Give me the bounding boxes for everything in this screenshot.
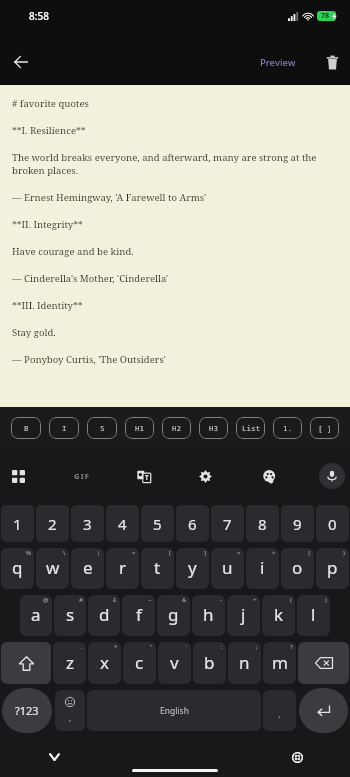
staticText: <: [237, 549, 241, 557]
button[interactable]: 8: [246, 505, 279, 542]
button[interactable]: %: [1, 548, 34, 589]
button[interactable]: (: [262, 595, 295, 636]
button[interactable]: ?123: [2, 688, 52, 733]
staticText: {: [308, 549, 311, 557]
button[interactable]: ?: [263, 642, 296, 684]
staticText: c: [135, 651, 144, 674]
button[interactable]: ~: [122, 595, 155, 636]
button[interactable]: 0: [316, 505, 349, 542]
button[interactable]: Change language: [284, 744, 310, 770]
button[interactable]: £: [88, 595, 120, 636]
button[interactable]: Back: [2, 43, 40, 81]
button[interactable]: |: [71, 548, 104, 589]
button[interactable]: 3: [71, 505, 104, 542]
staticText: English: [160, 705, 189, 717]
button[interactable]: <: [211, 548, 244, 589]
button[interactable]: ': [158, 642, 191, 684]
button[interactable]: -: [192, 595, 225, 636]
staticText: The world breaks everyone, and afterward…: [12, 151, 324, 177]
button[interactable]: 4: [106, 505, 139, 542]
button[interactable]: GIF: [67, 461, 97, 491]
button[interactable]: \: [36, 548, 69, 589]
button[interactable]: 1: [1, 505, 34, 542]
staticText: ]: [204, 549, 206, 557]
staticText: >: [272, 549, 276, 557]
button[interactable]: ;: [228, 642, 261, 684]
button[interactable]: I: [49, 417, 79, 439]
button[interactable]: #: [54, 595, 86, 636]
button[interactable]: H1: [125, 417, 154, 439]
staticText: m: [272, 651, 288, 674]
button[interactable]: Voice input: [319, 463, 345, 489]
button[interactable]: ": [123, 642, 156, 684]
button[interactable]: H3: [199, 417, 228, 439]
staticText: S: [100, 423, 105, 433]
staticText: *: [114, 643, 118, 651]
button[interactable]: >: [246, 548, 279, 589]
staticText: 6: [188, 514, 197, 534]
staticText: 1: [13, 514, 22, 534]
button[interactable]: ): [297, 595, 330, 636]
staticText: 78: [321, 11, 330, 21]
staticText: s: [66, 603, 75, 626]
button[interactable]: 1.: [273, 417, 302, 439]
button[interactable]: ]: [176, 548, 209, 589]
button[interactable]: Themes: [254, 461, 284, 491]
button[interactable]: {: [281, 548, 314, 589]
button[interactable]: [ ]: [310, 417, 339, 439]
staticText: b: [204, 651, 215, 674]
staticText: **II. Integrity**: [12, 218, 83, 231]
button[interactable]: Preview: [253, 49, 303, 76]
staticText: £: [113, 596, 117, 604]
button[interactable]: Enter: [299, 688, 348, 733]
button[interactable]: S: [87, 417, 117, 439]
staticText: g: [168, 603, 179, 626]
button[interactable]: }: [316, 548, 349, 589]
staticText: }: [343, 549, 346, 557]
button[interactable]: List: [236, 417, 265, 439]
button[interactable]: 2: [36, 505, 69, 542]
button[interactable]: Settings: [190, 461, 220, 491]
staticText: ): [325, 596, 327, 604]
staticText: H3: [209, 423, 218, 433]
staticText: &: [182, 596, 187, 604]
button[interactable]: H2: [162, 417, 191, 439]
button[interactable]: 7: [211, 505, 244, 542]
button[interactable]: =: [106, 548, 139, 589]
button[interactable]: .: [53, 642, 86, 684]
button[interactable]: 9: [281, 505, 314, 542]
button[interactable]: Emoji: [55, 690, 85, 731]
staticText: ?: [290, 643, 293, 651]
button[interactable]: 5: [141, 505, 174, 542]
button[interactable]: Backspace: [298, 642, 349, 684]
button[interactable]: @: [20, 595, 52, 636]
staticText: +: [253, 596, 257, 604]
staticText: \: [63, 549, 66, 557]
staticText: List: [242, 423, 260, 433]
staticText: #: [79, 596, 83, 604]
staticText: v: [170, 651, 179, 674]
button[interactable]: Period: [263, 690, 296, 731]
button[interactable]: B: [11, 417, 41, 439]
button[interactable]: +: [227, 595, 260, 636]
staticText: r: [119, 556, 127, 579]
button[interactable]: 6: [176, 505, 209, 542]
staticText: Have courage and be kind.: [12, 245, 134, 258]
button[interactable]: Shift: [1, 642, 51, 684]
button[interactable]: *: [88, 642, 121, 684]
button[interactable]: Hide keyboard: [41, 744, 67, 770]
staticText: ,: [69, 712, 72, 723]
staticText: — Cinderella's Mother, 'Cinderella': [12, 272, 169, 285]
button[interactable]: [: [141, 548, 174, 589]
button[interactable]: Stickers: [129, 461, 159, 491]
staticText: e: [83, 556, 93, 579]
staticText: :: [221, 643, 223, 651]
button[interactable]: Toolbar: [3, 461, 33, 491]
button[interactable]: :: [193, 642, 226, 684]
staticText: — Ernest Hemingway, 'A Farewell to Arms': [12, 191, 207, 204]
button[interactable]: English: [87, 690, 261, 731]
staticText: u: [222, 556, 233, 579]
button[interactable]: &: [157, 595, 190, 636]
staticText: ;: [256, 643, 258, 651]
button[interactable]: Delete: [316, 46, 348, 78]
